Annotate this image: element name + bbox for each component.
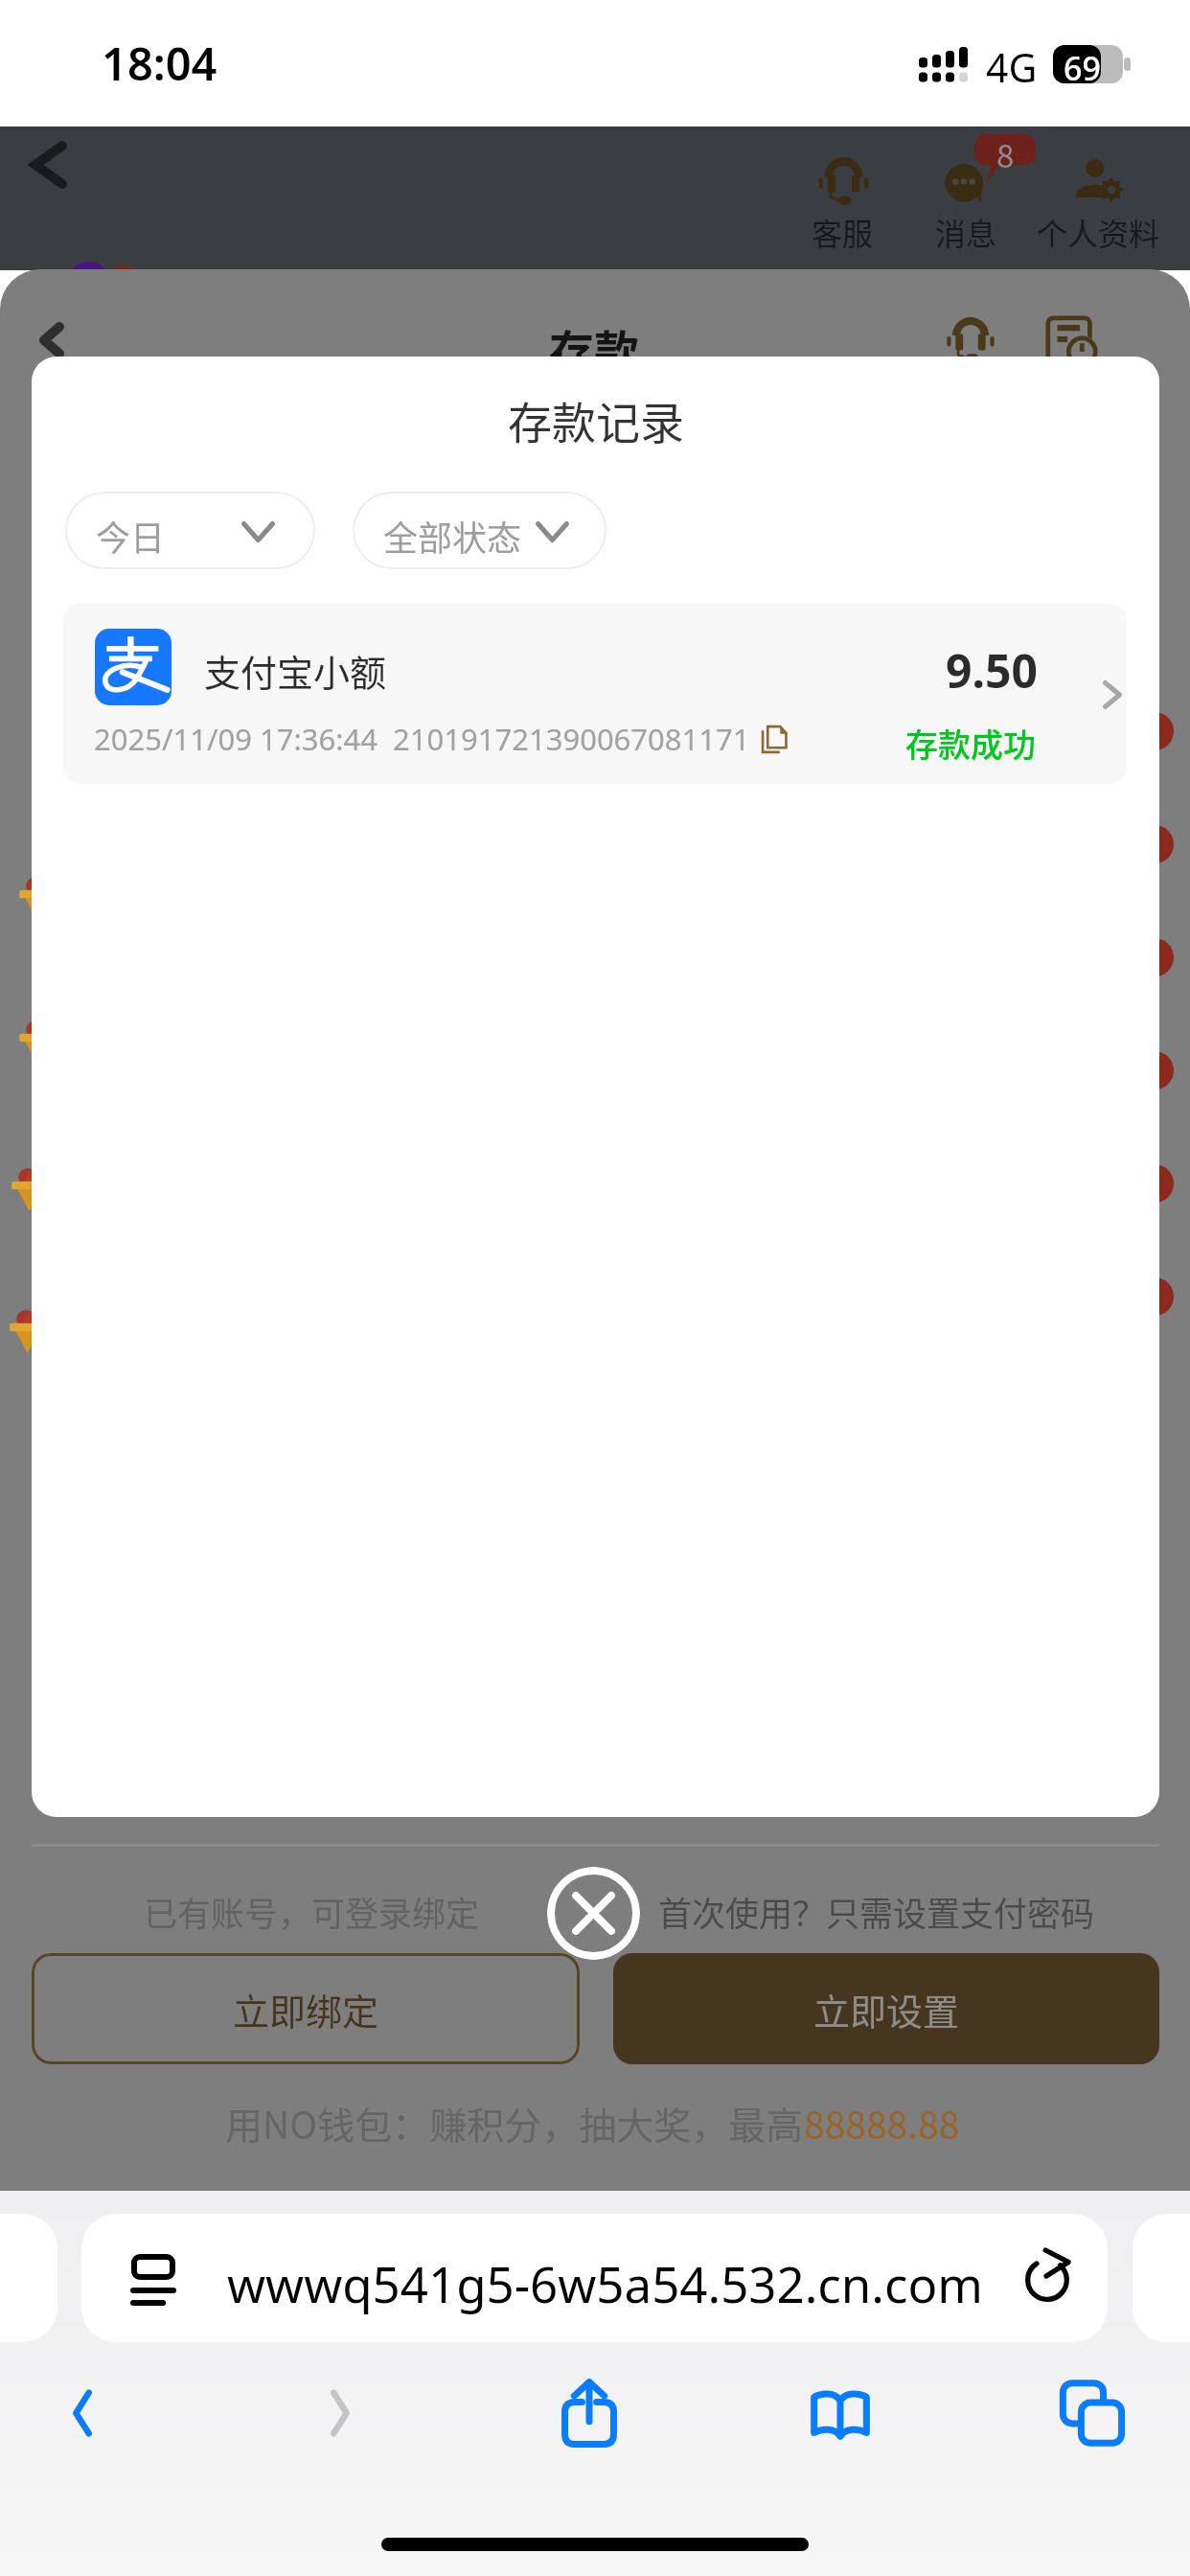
staticText: 88888.88 <box>804 2096 960 2150</box>
staticText: 客服 <box>812 210 874 254</box>
staticText: wwwq541g5-6w5a54.532.cn.com <box>227 2250 984 2316</box>
staticText: 存款记录 <box>508 388 684 452</box>
button[interactable]: Tabs <box>1040 2360 1145 2466</box>
staticText: 2025/11/09 17:36:44 21019172139006708117… <box>94 719 750 759</box>
button[interactable]: Share <box>537 2360 642 2466</box>
staticText: 立即设置 <box>813 1983 960 2035</box>
staticText: 4G <box>986 40 1038 94</box>
staticText: 立即绑定 <box>233 1983 379 2035</box>
staticText: 支付宝小额 <box>204 644 387 697</box>
staticText: 存款成功 <box>905 720 1036 767</box>
staticText: 首次使用？只需设置支付密码 <box>658 1887 1095 1936</box>
staticText: 9.50 <box>946 639 1038 701</box>
staticText: 消息 <box>935 210 997 254</box>
staticText: 8 <box>996 131 1015 177</box>
button[interactable]: Back <box>15 131 82 198</box>
button[interactable]: Close <box>547 1867 640 1960</box>
staticText: 个人资料 <box>1037 210 1160 254</box>
staticText: 69 <box>1064 46 1101 90</box>
button[interactable]: Back <box>30 2360 135 2466</box>
button[interactable]: Reload <box>1016 2242 1079 2306</box>
button[interactable]: Copy order number <box>755 717 795 757</box>
button[interactable]: 支付宝小额 <box>63 604 1127 784</box>
button[interactable]: 个人资料 <box>1033 126 1161 270</box>
staticText: 存款 <box>549 315 639 380</box>
button[interactable]: 全部状态 <box>353 492 606 569</box>
staticText: 18:04 <box>102 33 217 94</box>
staticText: 全部状态 <box>383 511 522 561</box>
button[interactable]: 消息 <box>910 126 1025 270</box>
staticText: 今日 <box>96 511 166 561</box>
staticText: 已有账号，可登录绑定 <box>144 1887 480 1936</box>
button[interactable]: Forward <box>287 2360 393 2466</box>
button[interactable]: Bookmarks <box>788 2360 893 2466</box>
button[interactable]: 客服 <box>786 126 901 270</box>
button[interactable]: 立即绑定 <box>32 1953 580 2064</box>
button[interactable]: 立即设置 <box>613 1953 1159 2064</box>
button[interactable]: 今日 <box>65 492 315 569</box>
staticText: 用NO钱包：赚积分，抽大奖，最高 <box>225 2096 804 2150</box>
button[interactable]: wwwq541g5-6w5a54.532.cn.com <box>81 2214 1108 2342</box>
